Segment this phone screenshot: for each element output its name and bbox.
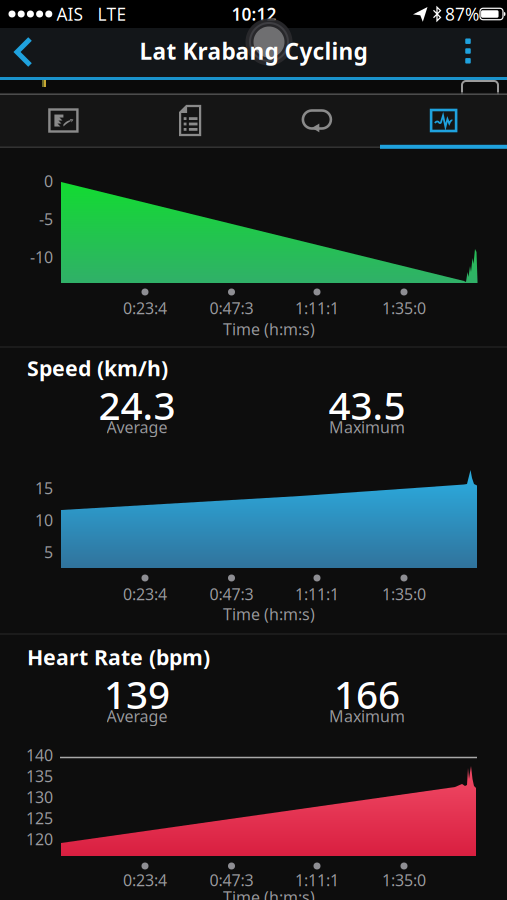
button[interactable]: Laps <box>253 94 380 147</box>
staticText: 10 <box>35 509 53 531</box>
staticText: 10:12 <box>231 2 276 25</box>
staticText: 43.5 <box>328 379 405 431</box>
staticText: 87% <box>445 2 479 25</box>
button[interactable]: Map layers <box>462 81 498 105</box>
staticText: Lat Krabang Cycling <box>139 36 367 66</box>
staticText: AIS <box>56 2 83 25</box>
button[interactable]: Stats <box>0 94 127 147</box>
staticText: Average <box>106 416 167 438</box>
staticText: Speed (km/h) <box>27 354 168 382</box>
staticText: 1:11:1 <box>295 297 339 319</box>
staticText: 0:47:3 <box>209 583 253 605</box>
staticText: 130 <box>26 786 53 808</box>
button[interactable]: Details <box>127 94 253 147</box>
staticText: 1:35:0 <box>382 583 426 605</box>
staticText: Heart Rate (bpm) <box>27 643 210 671</box>
staticText: 1:11:1 <box>295 869 339 891</box>
staticText: Average <box>106 705 167 727</box>
button[interactable]: More options <box>448 29 488 73</box>
button[interactable]: Back <box>2 30 46 74</box>
staticText: 120 <box>26 828 53 850</box>
staticText: 0:23:4 <box>123 869 167 891</box>
staticText: 139 <box>104 668 170 720</box>
staticText: 15 <box>35 477 53 499</box>
staticText: 1:35:0 <box>382 869 426 891</box>
staticText: 24.3 <box>98 379 175 431</box>
staticText: 0:23:4 <box>123 583 167 605</box>
staticText: Time (h:m:s) <box>223 886 315 900</box>
staticText: 0:47:3 <box>209 869 253 891</box>
staticText: LTE <box>97 2 126 25</box>
staticText: 135 <box>26 765 53 787</box>
staticText: 125 <box>26 807 53 829</box>
staticText: 1:35:0 <box>382 297 426 319</box>
button[interactable]: Charts <box>380 94 507 147</box>
staticText: 0 <box>44 170 53 192</box>
staticText: 1:11:1 <box>295 583 339 605</box>
staticText: Time (h:m:s) <box>223 318 315 340</box>
staticText: -5 <box>39 208 53 230</box>
staticText: 0:47:3 <box>209 297 253 319</box>
staticText: Maximum <box>329 416 405 438</box>
button[interactable]: AssistiveTouch <box>245 18 292 65</box>
staticText: 166 <box>334 668 400 720</box>
staticText: 140 <box>26 744 53 766</box>
staticText: Time (h:m:s) <box>223 603 315 625</box>
staticText: 0:23:4 <box>123 297 167 319</box>
staticText: -10 <box>30 246 53 268</box>
staticText: 5 <box>44 541 53 563</box>
staticText: Maximum <box>329 705 405 727</box>
